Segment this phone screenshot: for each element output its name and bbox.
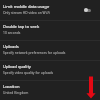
button[interactable]: Uploads xyxy=(0,41,100,61)
button[interactable]: Upload quality xyxy=(0,61,100,81)
button[interactable]: Double tap to seek xyxy=(0,21,100,41)
button[interactable]: Toggle Limit mobile data usage xyxy=(83,6,92,15)
staticText: Specify video quality for uploads xyxy=(3,70,54,74)
staticText: United Kingdom xyxy=(3,90,29,94)
button[interactable]: Limit mobile data usage xyxy=(0,1,100,21)
staticText: Limit mobile data usage xyxy=(3,4,50,10)
staticText: 10 seconds xyxy=(3,30,21,34)
staticText: Uploads xyxy=(3,44,19,50)
button[interactable]: Scroll down xyxy=(86,76,96,99)
staticText: Double tap to seek xyxy=(3,24,40,30)
staticText: Location xyxy=(3,84,20,90)
staticText: Upload quality xyxy=(3,64,31,70)
staticText: Only stream HD video on Wi-Fi xyxy=(3,10,51,14)
staticText: Specify network preferences for uploads xyxy=(3,50,66,54)
button[interactable]: Location xyxy=(0,81,100,100)
